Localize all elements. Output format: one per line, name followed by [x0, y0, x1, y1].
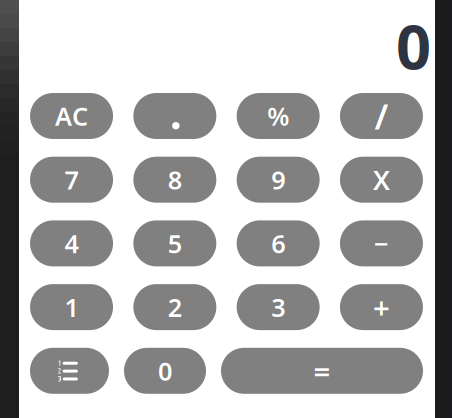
button[interactable]: / — [340, 93, 423, 139]
button[interactable]: = — [221, 348, 423, 394]
staticText: 6 — [271, 227, 285, 260]
button[interactable]: 1 — [30, 284, 113, 330]
staticText: 0 — [158, 354, 172, 388]
button[interactable]: X — [340, 157, 423, 203]
staticText: + — [373, 288, 390, 327]
staticText: 5 — [168, 227, 182, 260]
button[interactable]: 5 — [133, 220, 216, 266]
button[interactable]: % — [237, 93, 320, 139]
button[interactable]: AC — [30, 93, 113, 139]
staticText: = — [313, 351, 330, 390]
staticText: 1 — [65, 290, 79, 324]
button[interactable]: − — [340, 220, 423, 266]
staticText: 9 — [271, 163, 285, 196]
button[interactable]: 7 — [30, 157, 113, 203]
button[interactable]: Decimal point — [133, 93, 216, 139]
staticText: 3 — [271, 290, 285, 324]
staticText: AC — [55, 99, 88, 133]
staticText: 2 — [168, 290, 182, 324]
button[interactable]: 9 — [237, 157, 320, 203]
staticText: X — [373, 162, 390, 197]
button[interactable]: 0 — [124, 348, 206, 394]
staticText: − — [374, 227, 389, 260]
button[interactable]: 6 — [237, 220, 320, 266]
staticText: 7 — [65, 163, 79, 196]
staticText: % — [267, 99, 289, 133]
button[interactable]: 2 — [133, 284, 216, 330]
button[interactable]: 4 — [30, 220, 113, 266]
button[interactable]: + — [340, 284, 423, 330]
button[interactable]: 8 — [133, 157, 216, 203]
button[interactable]: History — [30, 348, 109, 394]
button[interactable]: 3 — [237, 284, 320, 330]
staticText: / — [374, 93, 388, 139]
staticText: 0 — [396, 5, 431, 86]
staticText: 8 — [168, 163, 182, 196]
staticText: 4 — [65, 227, 79, 260]
